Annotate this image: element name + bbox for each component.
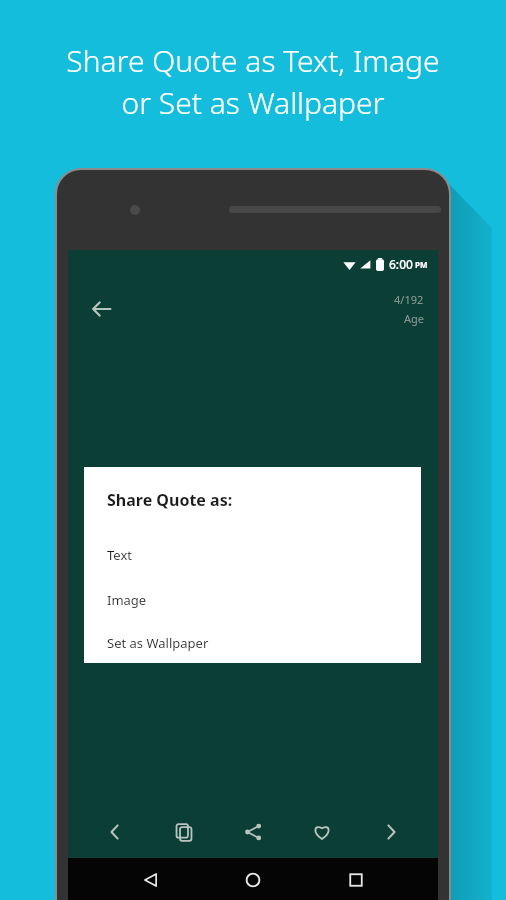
staticText: Set as Wallpaper bbox=[107, 634, 209, 652]
button[interactable]: Back bbox=[131, 860, 171, 900]
staticText: Share Quote as: bbox=[107, 489, 233, 511]
button[interactable]: Text bbox=[84, 532, 421, 577]
button[interactable]: Favorite bbox=[300, 810, 344, 854]
staticText: Image bbox=[107, 591, 147, 609]
button[interactable]: Next bbox=[369, 810, 413, 854]
button[interactable]: Image bbox=[84, 577, 421, 622]
staticText: Age bbox=[404, 311, 424, 326]
button[interactable]: Set as Wallpaper bbox=[84, 622, 421, 663]
button[interactable]: Copy bbox=[162, 810, 206, 854]
staticText: Text bbox=[107, 546, 132, 564]
button[interactable]: Home bbox=[233, 860, 273, 900]
button[interactable]: Share bbox=[231, 810, 275, 854]
button[interactable]: Back bbox=[82, 289, 122, 329]
staticText: 4/192 bbox=[394, 292, 424, 307]
button[interactable]: Previous bbox=[93, 810, 137, 854]
staticText: Share Quote as Text, Image or Set as Wal… bbox=[66, 40, 440, 123]
staticText: 6:00 bbox=[389, 256, 413, 272]
staticText: PM bbox=[415, 259, 428, 270]
button[interactable]: Recents bbox=[336, 860, 376, 900]
